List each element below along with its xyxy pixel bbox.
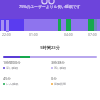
staticText: 22:00 (2, 32, 11, 37)
button[interactable]: 3時38分 (51, 60, 97, 70)
staticText: 07:00 (88, 32, 97, 37)
staticText: 01:00 (29, 32, 38, 37)
staticText: レム睡眠 (6, 82, 19, 86)
staticText: 3時38分 (51, 60, 66, 65)
staticText: 0分 (51, 76, 57, 81)
staticText: 深い睡眠 (6, 66, 19, 70)
button[interactable]: 0分 (51, 76, 97, 86)
staticText: 浅い睡眠 (54, 66, 67, 70)
staticText: 1時間00分 (3, 60, 21, 65)
button[interactable]: 45分 (3, 76, 49, 86)
staticText: 04:00 (64, 32, 73, 37)
staticText: 75%のユーザーよりも長い睡眠です (19, 4, 81, 9)
staticText: 45分 (3, 76, 12, 81)
staticText: 覚醒状態 (54, 82, 66, 86)
staticText: 5時間23分 (0, 45, 100, 51)
button[interactable]: 1時間00分 (3, 60, 49, 70)
